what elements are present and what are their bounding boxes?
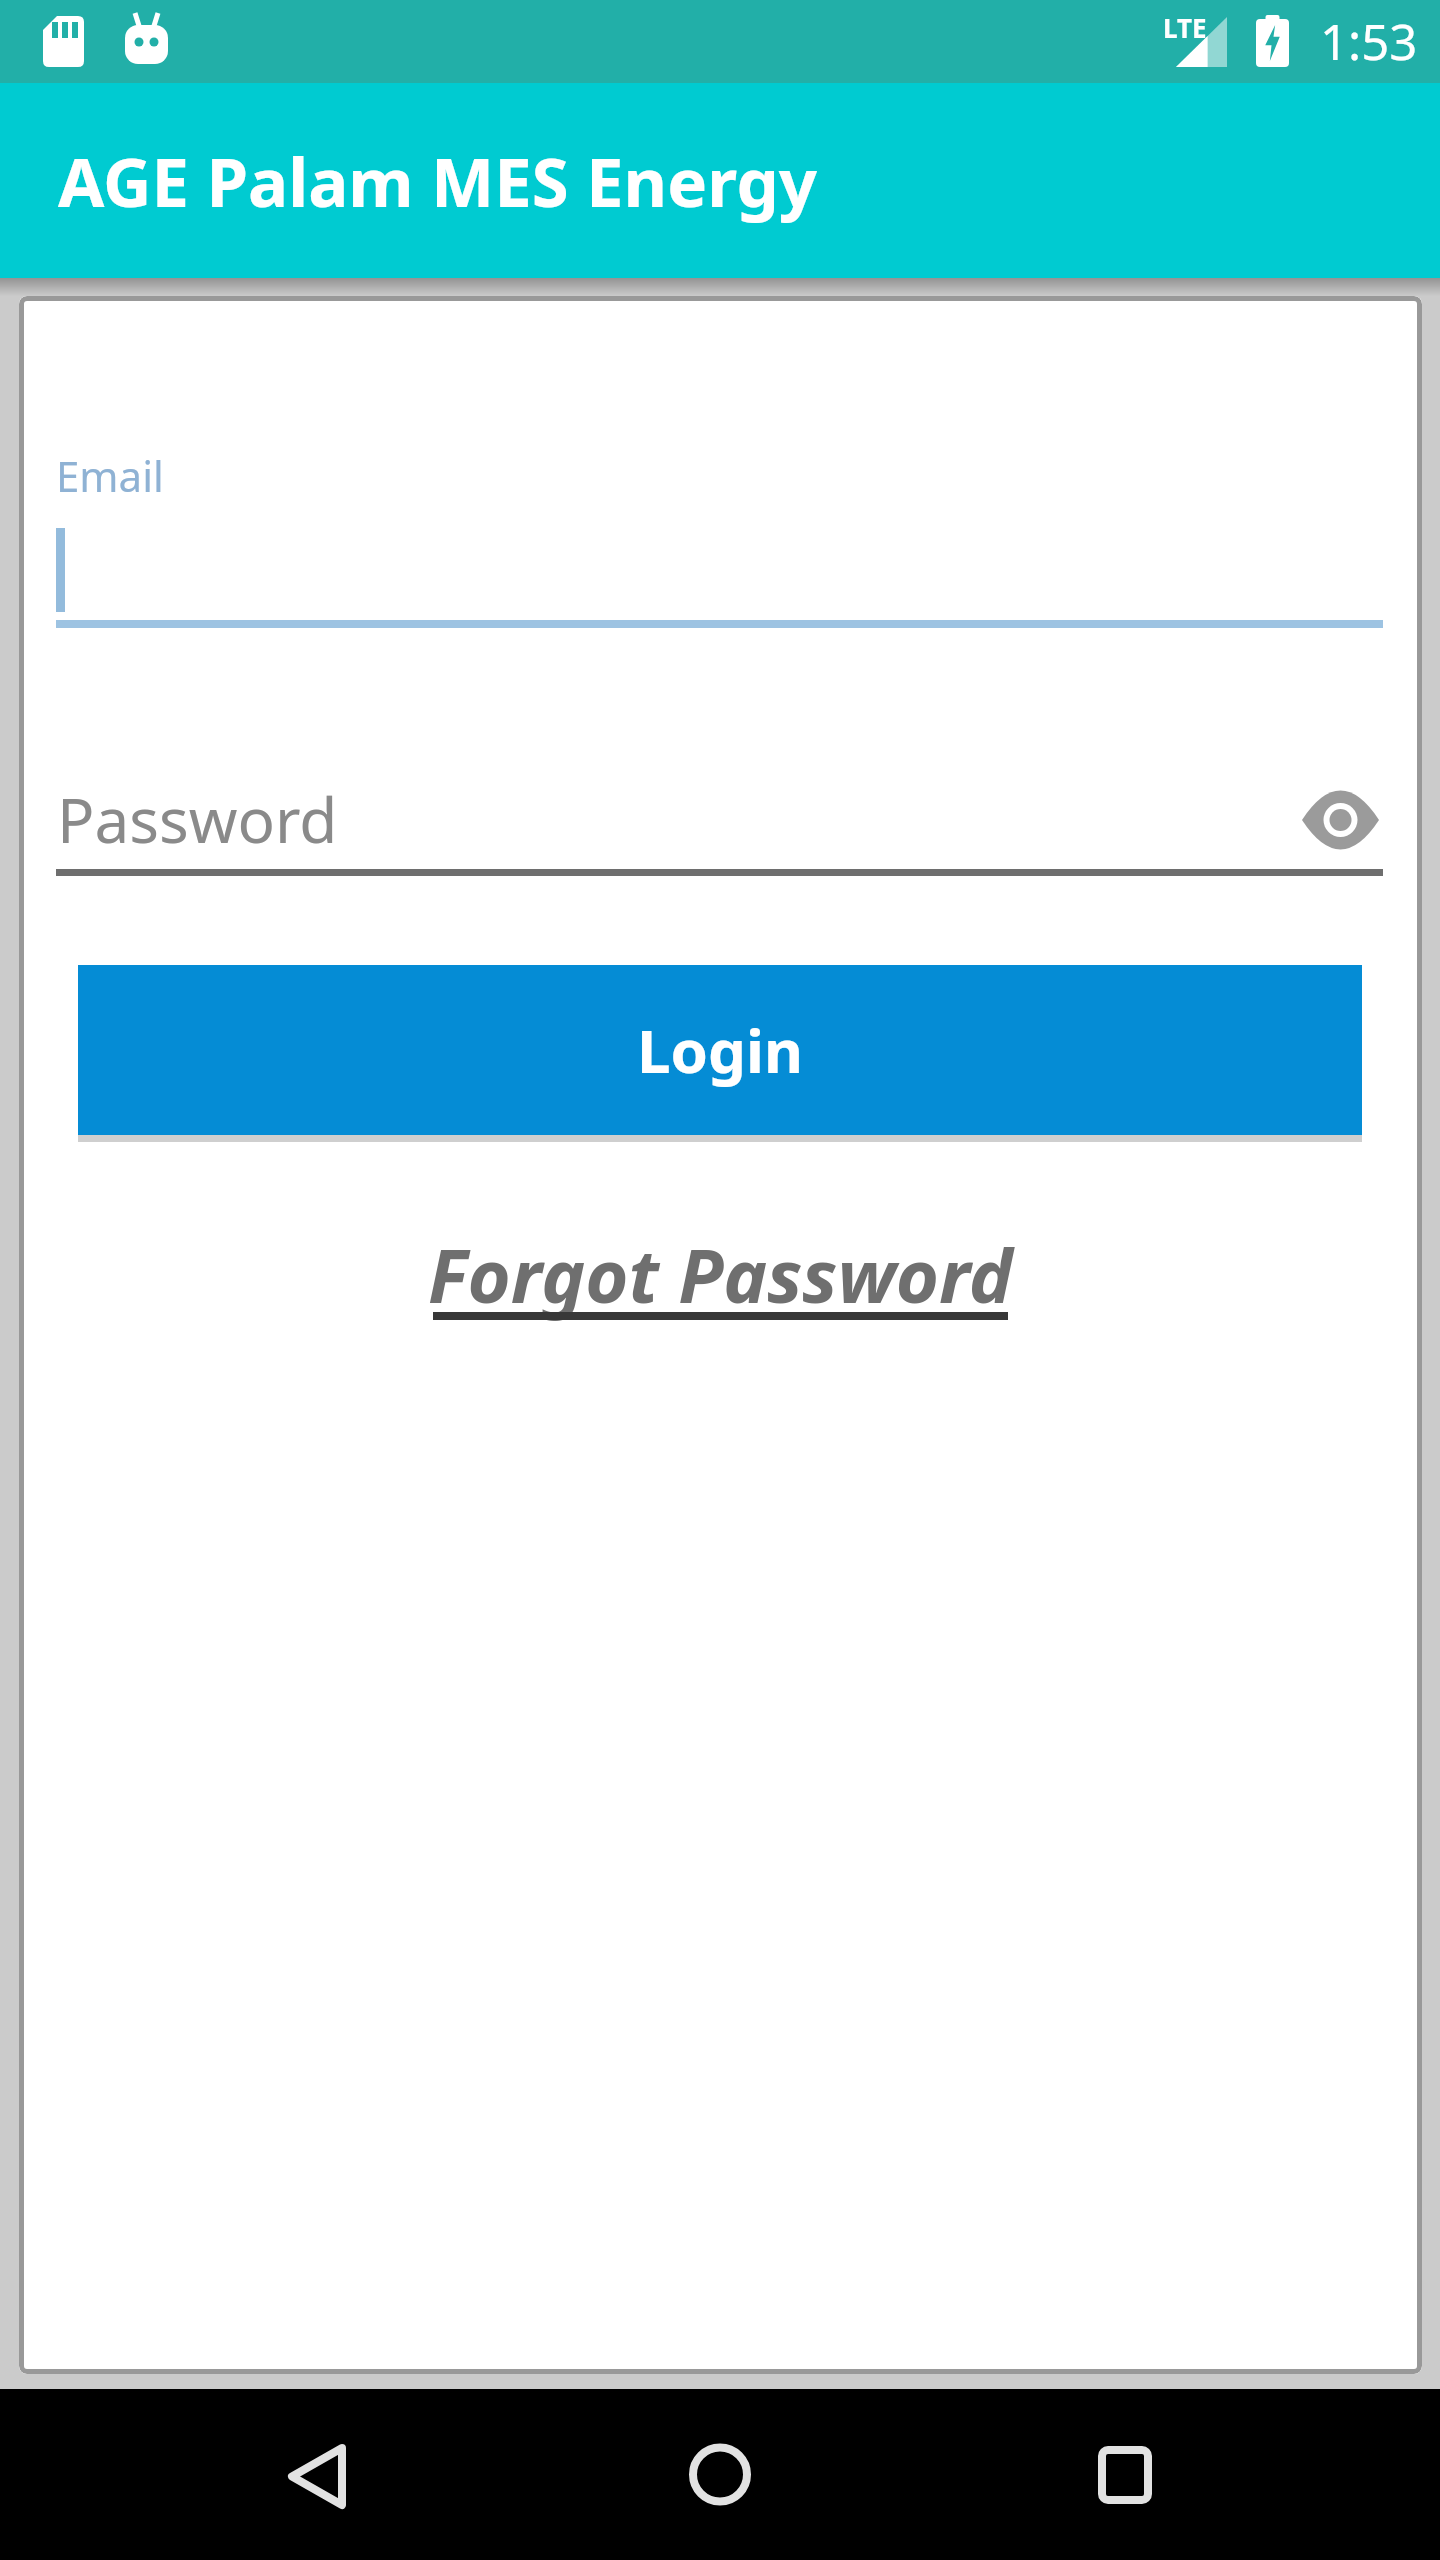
staticText: 1:53 (1320, 8, 1418, 75)
button[interactable] (1098, 2446, 1152, 2504)
staticText: Password (57, 777, 338, 861)
button[interactable] (56, 496, 1383, 628)
button[interactable]: Forgot Password (428, 1224, 1013, 1325)
staticText: LTE (1163, 10, 1207, 45)
staticText: AGE Palam MES Energy (58, 135, 818, 226)
button[interactable]: Login (78, 965, 1362, 1135)
button[interactable] (288, 2444, 346, 2509)
button[interactable] (1302, 792, 1379, 848)
staticText: Login (637, 1009, 803, 1091)
staticText: Email (56, 447, 164, 504)
button[interactable] (689, 2442, 751, 2507)
